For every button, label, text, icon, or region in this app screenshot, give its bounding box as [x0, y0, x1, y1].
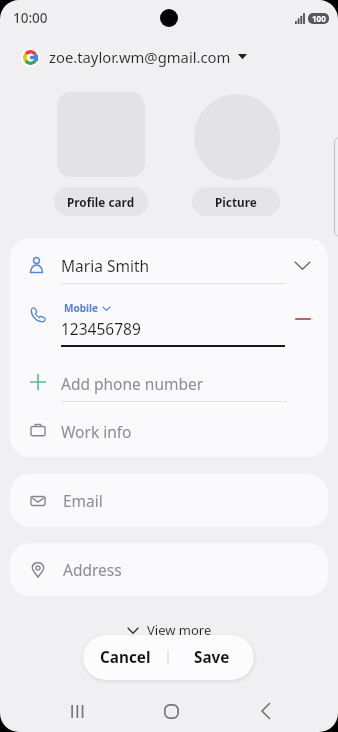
button[interactable]: Cancel — [83, 635, 167, 680]
button[interactable]: Add phone number — [10, 356, 328, 403]
button[interactable]: Picture — [192, 187, 280, 216]
button[interactable]: Email — [10, 474, 328, 527]
staticText: Address — [63, 559, 122, 580]
button[interactable]: Mobile — [64, 299, 111, 317]
button[interactable]: Address — [10, 543, 328, 596]
button[interactable]: Home — [143, 690, 199, 732]
staticText: Email — [63, 490, 103, 511]
staticText: Cancel — [100, 647, 151, 668]
staticText: Work info — [61, 421, 132, 442]
button[interactable]: Save — [169, 635, 254, 680]
button[interactable]: Remove phone number — [285, 301, 320, 336]
staticText: Maria Smith — [61, 255, 150, 276]
button[interactable]: Recents — [48, 690, 104, 732]
staticText: 123456789 — [61, 318, 141, 339]
staticText: 10:00 — [13, 9, 48, 27]
button[interactable]: Expand name — [283, 246, 321, 284]
button[interactable]: Maria Smith — [10, 238, 328, 294]
button[interactable]: zoe.taylor.wm@gmail.com — [0, 43, 247, 71]
staticText: Picture — [215, 194, 257, 210]
staticText: zoe.taylor.wm@gmail.com — [49, 47, 231, 67]
staticText: Add phone number — [61, 373, 204, 394]
staticText: Mobile — [64, 301, 98, 315]
staticText: Profile card — [67, 194, 135, 210]
button[interactable]: View more — [127, 619, 212, 641]
button[interactable]: Profile card — [54, 187, 148, 216]
button[interactable]: Picture — [194, 94, 280, 180]
staticText: View more — [147, 621, 212, 639]
button[interactable]: Work info — [10, 403, 328, 457]
staticText: 100 — [312, 13, 326, 24]
button[interactable]: Back — [237, 690, 293, 732]
staticText: Save — [194, 647, 230, 668]
